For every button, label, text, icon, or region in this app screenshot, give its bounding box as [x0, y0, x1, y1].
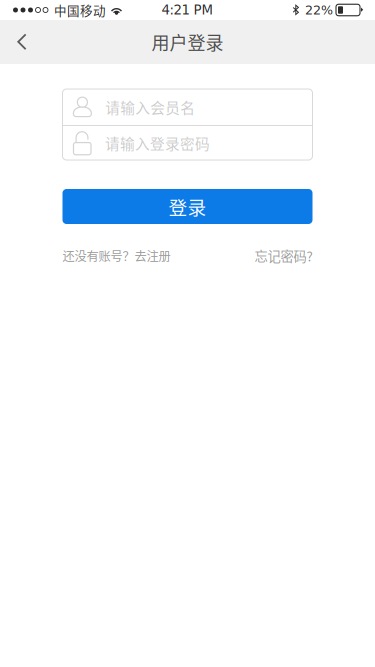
- staticText: 请输入会员名: [105, 96, 195, 118]
- staticText: 4:21 PM: [161, 2, 213, 18]
- staticText: 中国移动: [54, 1, 106, 19]
- button[interactable]: 还没有账号？去注册: [62, 247, 170, 265]
- button[interactable]: 忘记密码?: [254, 246, 312, 265]
- staticText: 22%: [305, 3, 333, 17]
- staticText: 用户登录: [151, 29, 223, 55]
- staticText: 请输入登录密码: [105, 132, 210, 154]
- button[interactable]: 请输入登录密码: [62, 126, 312, 160]
- button[interactable]: 请输入会员名: [62, 89, 312, 125]
- staticText: 忘记密码?: [254, 246, 312, 265]
- button[interactable]: Back: [0, 20, 44, 64]
- staticText: 登录: [168, 193, 206, 220]
- button[interactable]: 登录: [62, 189, 312, 224]
- staticText: 还没有账号？去注册: [62, 247, 170, 265]
